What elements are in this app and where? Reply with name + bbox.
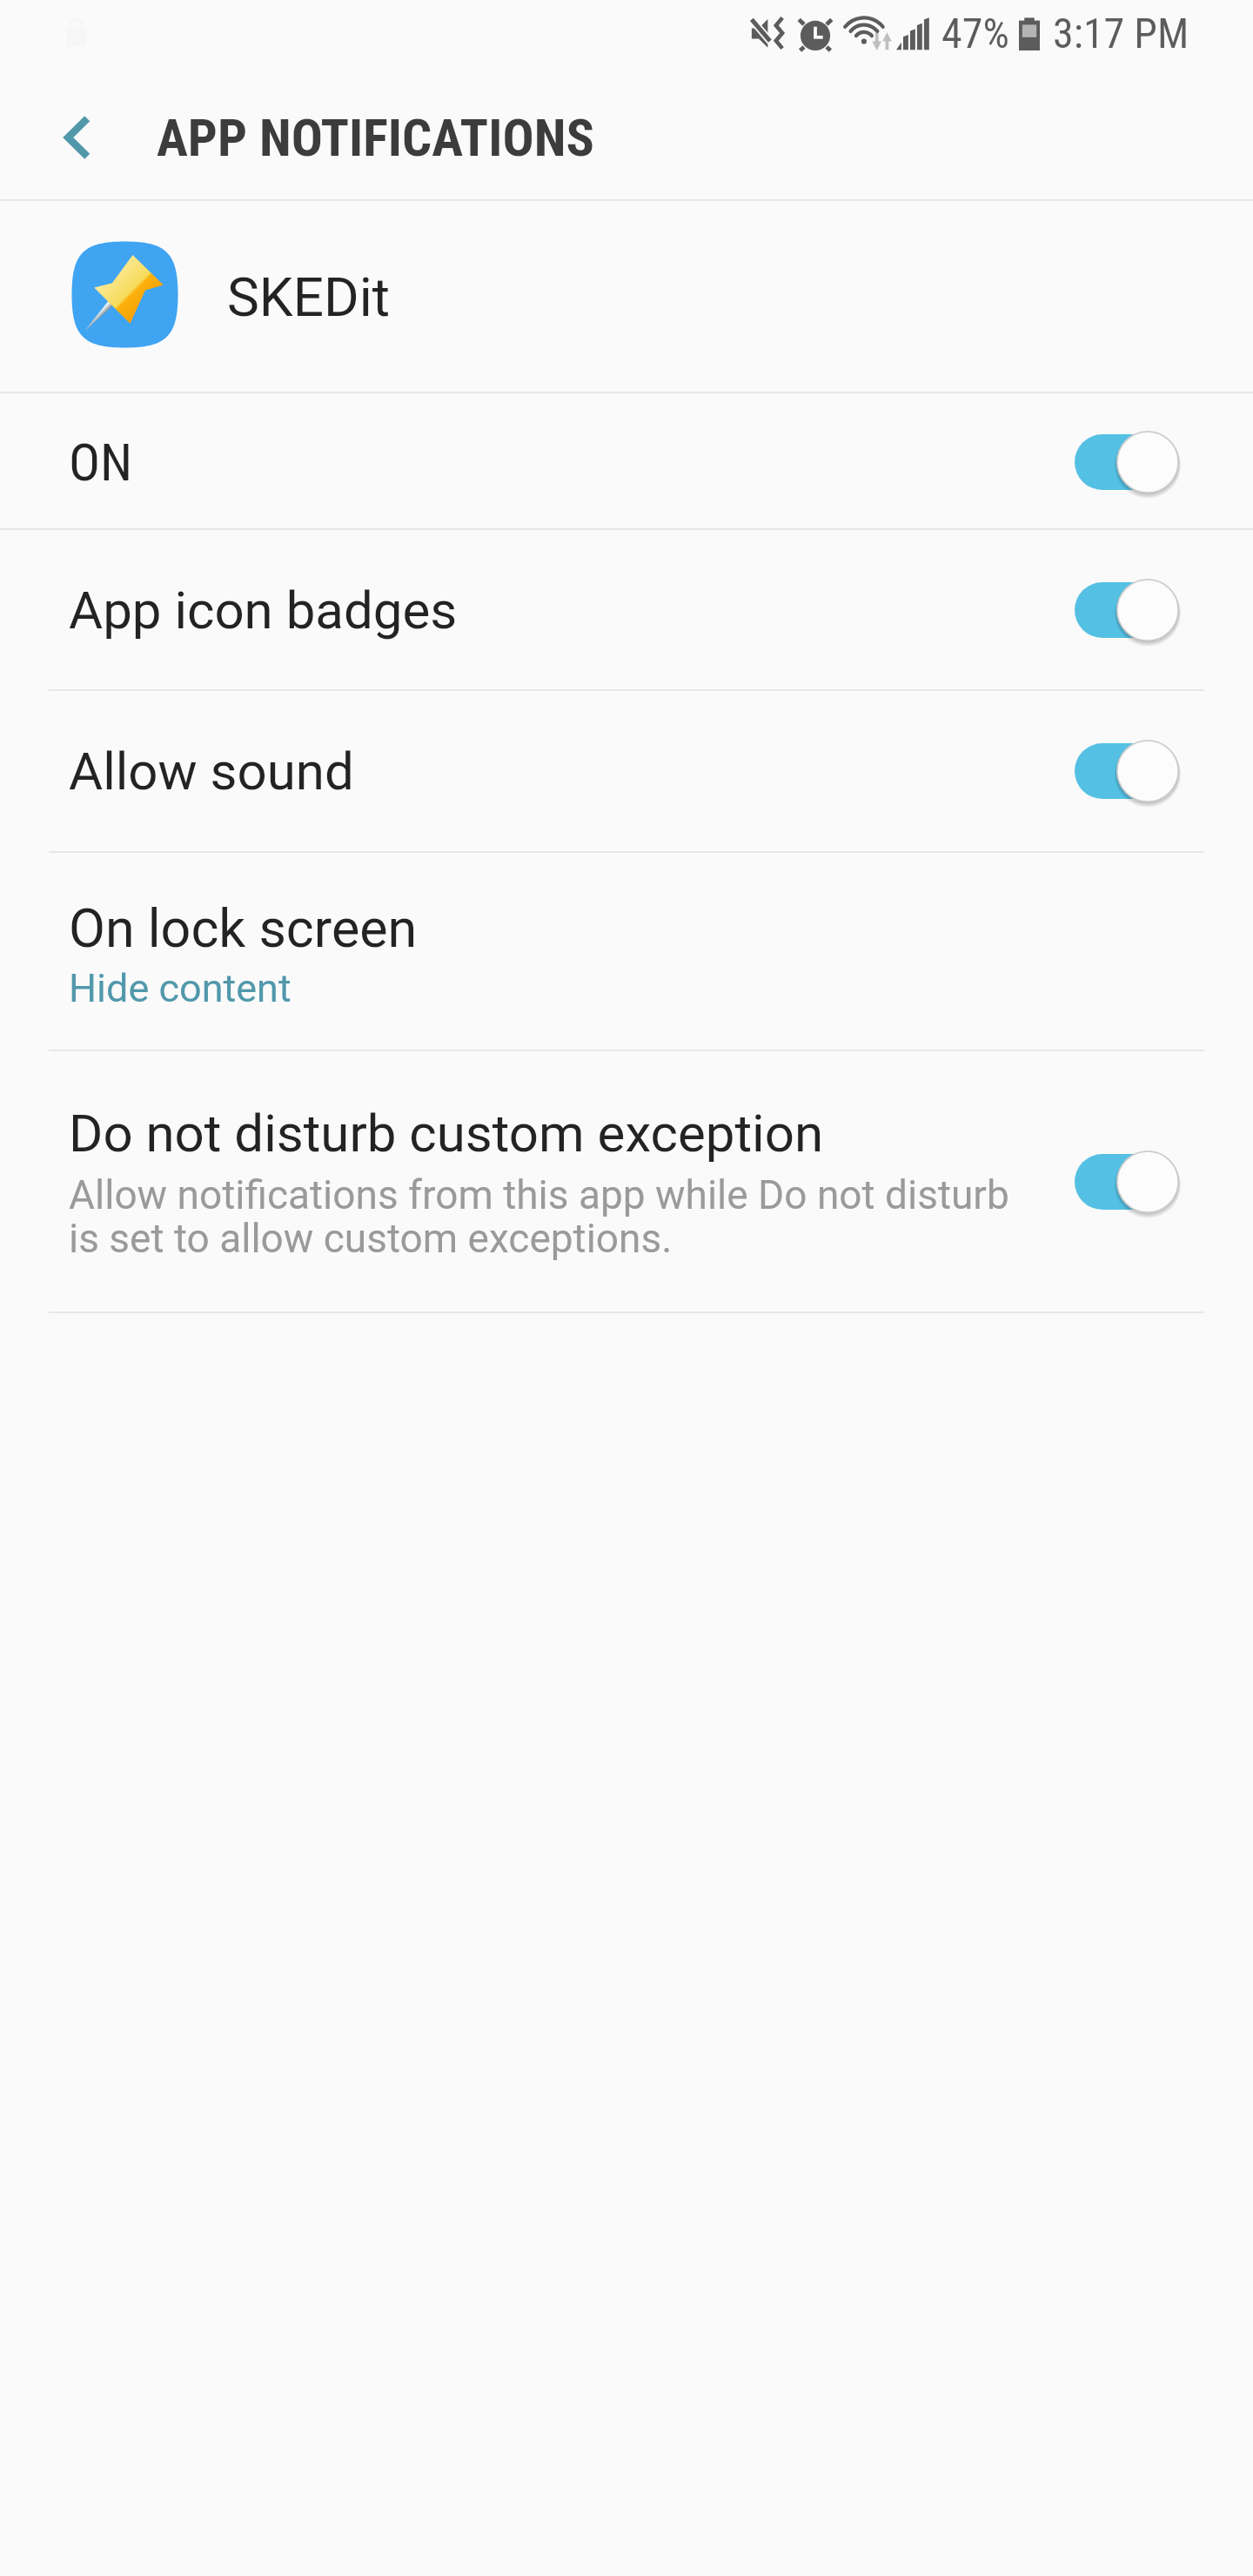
staticText: Allow sound bbox=[69, 741, 354, 802]
button[interactable]: Toggle bbox=[1075, 579, 1179, 641]
button[interactable]: SKEDit bbox=[0, 201, 1253, 393]
button[interactable]: Toggle bbox=[1075, 740, 1179, 802]
button[interactable]: On lock screen bbox=[0, 853, 1253, 1050]
staticText: Allow notifications from this app while … bbox=[69, 1171, 1009, 1263]
button[interactable]: ON bbox=[0, 393, 1253, 530]
staticText: Hide content bbox=[69, 965, 291, 1011]
staticText: On lock screen bbox=[69, 897, 418, 959]
staticText: APP NOTIFICATIONS bbox=[157, 107, 594, 168]
button[interactable]: Do not disturb custom exception bbox=[0, 1051, 1253, 1311]
staticText: 47% bbox=[941, 9, 1009, 57]
staticText: App icon badges bbox=[69, 580, 458, 641]
button[interactable]: App icon badges bbox=[0, 530, 1253, 689]
staticText: ON bbox=[69, 432, 133, 493]
staticText: 3:17 PM bbox=[1053, 9, 1189, 57]
button[interactable]: Toggle bbox=[1075, 1150, 1179, 1213]
staticText: SKEDit bbox=[227, 265, 390, 329]
staticText: Do not disturb custom exception bbox=[69, 1103, 824, 1164]
button[interactable]: Navigate up bbox=[0, 73, 157, 201]
button[interactable]: Toggle bbox=[1075, 431, 1179, 493]
button[interactable]: Allow sound bbox=[0, 691, 1253, 851]
